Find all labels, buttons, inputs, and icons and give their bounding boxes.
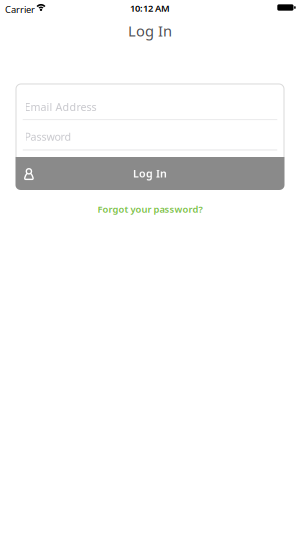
staticText: 10:12 AM: [130, 2, 170, 14]
staticText: Carrier: [5, 3, 35, 16]
staticText: Email Address: [24, 100, 96, 114]
button[interactable]: Forgot your password?: [97, 203, 202, 215]
button[interactable]: Password: [15, 120, 284, 149]
button[interactable]: Log In: [15, 157, 284, 190]
button[interactable]: Email Address: [15, 83, 284, 119]
staticText: Log In: [128, 21, 172, 40]
staticText: Password: [24, 130, 71, 144]
staticText: Forgot your password?: [97, 203, 202, 215]
staticText: Log In: [133, 166, 167, 181]
